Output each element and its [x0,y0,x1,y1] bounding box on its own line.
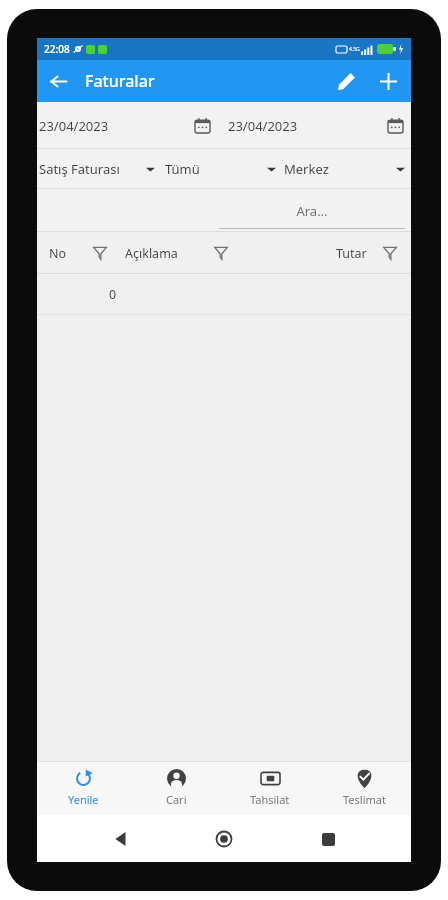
button[interactable]: Cari [130,761,223,815]
staticText: 23/04/2023 [39,117,109,135]
button[interactable]: Yenile [37,761,130,815]
staticText: Tutar [336,245,367,262]
button[interactable]: Recents [308,819,348,859]
button[interactable]: 23/04/2023 [224,102,411,149]
button[interactable]: Merkez [280,149,411,189]
button[interactable]: Tümü [161,149,280,189]
staticText: 23/04/2023 [228,117,298,135]
button[interactable]: Tahsilat [223,761,317,815]
staticText: Teslimat [343,792,386,807]
button[interactable]: Filter Tutar [379,242,401,264]
button[interactable]: Satış Faturası [37,149,161,189]
button[interactable]: Back [37,60,79,102]
staticText: Merkez [284,160,329,178]
button[interactable]: 23/04/2023 [37,102,224,149]
staticText: 0 [109,286,117,303]
staticText: Tahsilat [250,792,290,807]
staticText: Yenile [68,792,99,807]
button[interactable]: Back [101,819,141,859]
staticText: Faturalar [85,70,155,92]
button[interactable]: Add [367,60,409,102]
staticText: No [49,245,67,262]
button[interactable]: Filter No [89,242,111,264]
staticText: Ara... [296,202,328,220]
staticText: Satış Faturası [39,160,120,178]
button[interactable]: Teslimat [317,761,411,815]
staticText: Cari [166,792,187,807]
button[interactable]: Filter Açıklama [210,242,232,264]
button[interactable]: Edit [325,60,367,102]
staticText: 4.5G [349,46,360,53]
staticText: Tümü [165,160,200,178]
staticText: Açıklama [125,245,178,262]
button[interactable]: Home [204,819,244,859]
staticText: 22:08 [44,42,70,56]
button[interactable]: Ara... [219,189,405,232]
